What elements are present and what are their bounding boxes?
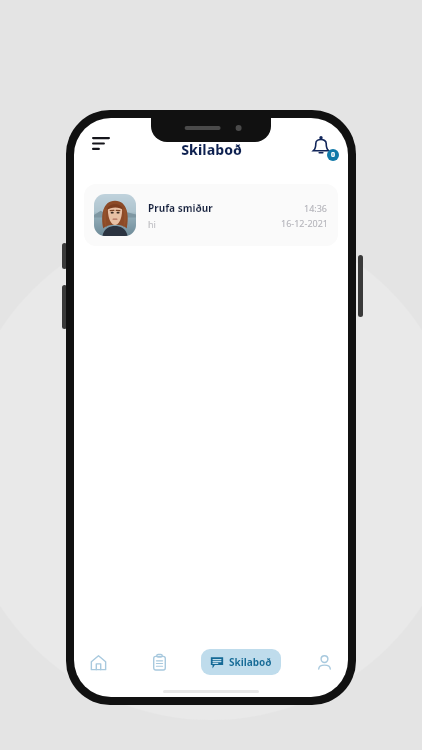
button[interactable]: Menu [84, 129, 118, 163]
button[interactable]: Prufa smiður [84, 184, 338, 246]
staticText: Skilaboð [181, 140, 242, 159]
staticText: 0 [331, 150, 336, 160]
button[interactable]: Tasks [141, 644, 177, 680]
staticText: 14:36 [304, 202, 328, 214]
staticText: 16-12-2021 [281, 217, 328, 229]
button[interactable]: Skilaboð [201, 649, 281, 675]
button[interactable]: Home [80, 644, 116, 680]
button[interactable]: Profile [306, 644, 342, 680]
staticText: Prufa smiður [148, 201, 213, 215]
button[interactable]: Notifications [304, 129, 338, 163]
staticText: Skilaboð [229, 655, 272, 669]
staticText: hi [148, 218, 156, 230]
